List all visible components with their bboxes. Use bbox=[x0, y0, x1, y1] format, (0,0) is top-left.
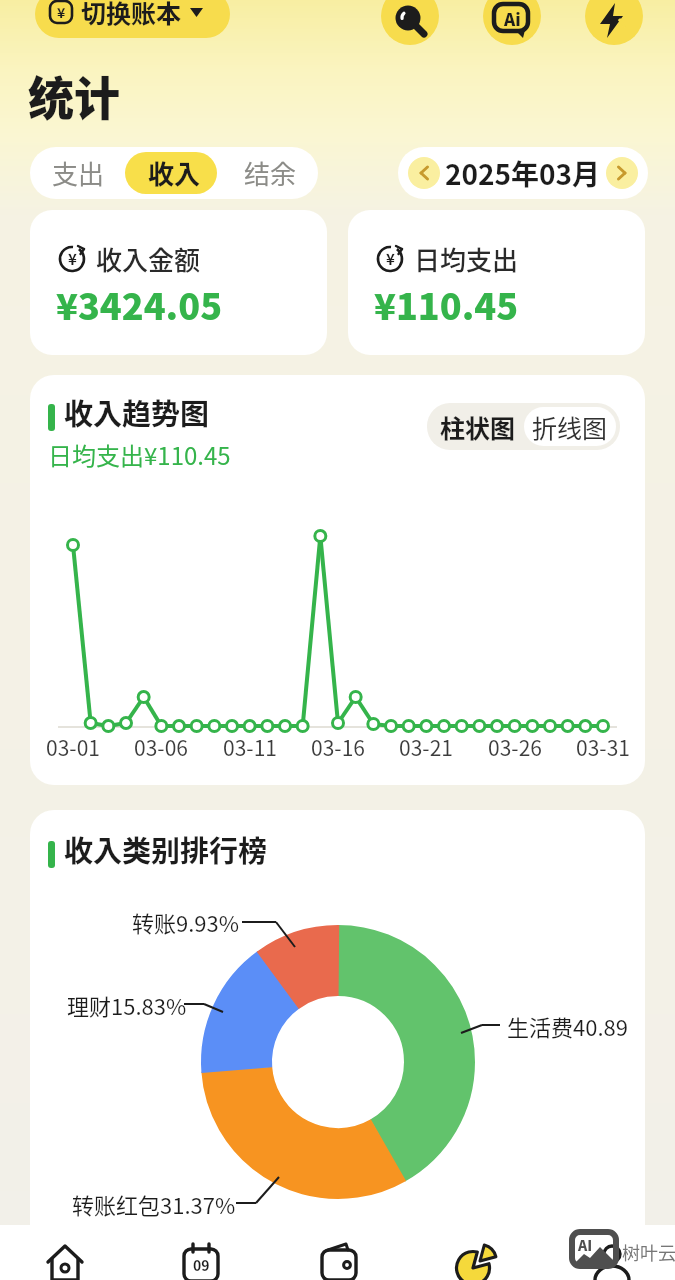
staticText: 切换账本 bbox=[81, 0, 182, 30]
button[interactable]: 柱状图 bbox=[427, 403, 528, 450]
staticText: 03-26 bbox=[488, 732, 542, 762]
staticText: 理财15.83% bbox=[67, 989, 187, 1021]
button[interactable]: 09 bbox=[143, 1225, 259, 1280]
button[interactable]: Ai bbox=[483, 0, 541, 45]
staticText: 柱状图 bbox=[440, 409, 516, 445]
staticText: 转账红包31.37% bbox=[72, 1188, 236, 1220]
staticText: ¥110.45 bbox=[374, 278, 519, 330]
button[interactable]: 支出 bbox=[30, 147, 126, 199]
staticText: AI bbox=[578, 1235, 593, 1255]
staticText: 03-16 bbox=[311, 732, 365, 762]
staticText: 统计 bbox=[28, 62, 120, 129]
staticText: 支出 bbox=[52, 154, 105, 192]
staticText: 03-11 bbox=[223, 732, 277, 762]
staticText: 03-31 bbox=[576, 732, 630, 762]
staticText: 2025年03月 bbox=[445, 153, 601, 194]
staticText: ¥ bbox=[386, 248, 395, 270]
button[interactable] bbox=[281, 1225, 397, 1280]
staticText: 03-06 bbox=[134, 732, 188, 762]
staticText: Ai bbox=[504, 6, 521, 31]
button[interactable]: 结余 bbox=[222, 147, 318, 199]
staticText: 收入金额 bbox=[96, 240, 201, 278]
button[interactable] bbox=[408, 157, 440, 189]
button[interactable] bbox=[585, 0, 643, 45]
button[interactable]: 收入 bbox=[126, 147, 222, 199]
button[interactable] bbox=[606, 157, 638, 189]
button[interactable] bbox=[7, 1225, 123, 1280]
staticText: ¥ bbox=[57, 2, 66, 22]
button[interactable]: ¥ bbox=[30, 210, 327, 355]
staticText: 折线图 bbox=[532, 409, 608, 445]
staticText: 转账9.93% bbox=[132, 906, 240, 938]
button[interactable]: ¥ bbox=[35, 0, 230, 38]
staticText: 09 bbox=[193, 1255, 210, 1275]
staticText: 03-21 bbox=[399, 732, 453, 762]
button[interactable]: 折线图 bbox=[524, 407, 616, 446]
staticText: 日均支出 bbox=[414, 240, 519, 278]
button[interactable] bbox=[381, 0, 439, 45]
staticText: 生活费40.89 bbox=[507, 1010, 628, 1042]
staticText: 收入 bbox=[148, 154, 201, 192]
button[interactable]: ¥ bbox=[348, 210, 645, 355]
button[interactable] bbox=[125, 152, 217, 194]
staticText: 收入类别排行榜 bbox=[64, 828, 268, 870]
staticText: ¥ bbox=[68, 248, 77, 270]
staticText: 树叶云 bbox=[622, 1239, 675, 1265]
staticText: 结余 bbox=[244, 154, 297, 192]
staticText: 收入趋势图 bbox=[64, 391, 210, 433]
staticText: ¥3424.05 bbox=[56, 278, 223, 330]
staticText: 日均支出¥110.45 bbox=[48, 437, 231, 472]
button[interactable] bbox=[554, 1225, 670, 1280]
button[interactable] bbox=[418, 1225, 534, 1280]
staticText: 03-01 bbox=[46, 732, 100, 762]
